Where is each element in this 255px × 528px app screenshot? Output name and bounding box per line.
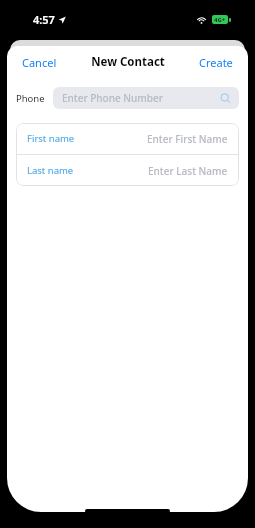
staticText: 4:57	[33, 12, 55, 27]
staticText: Enter Last Name	[148, 164, 228, 178]
staticText: Enter First Name	[147, 132, 228, 146]
button[interactable]: Create	[191, 50, 248, 75]
button[interactable]: Enter Phone Number	[53, 87, 239, 109]
staticText: Last name	[27, 164, 74, 177]
staticText: First name	[27, 132, 75, 145]
staticText: Create	[199, 55, 233, 70]
staticText: Phone	[16, 92, 45, 105]
staticText: Cancel	[22, 55, 57, 70]
staticText: Enter Phone Number	[62, 91, 163, 105]
button[interactable]: Last name	[16, 155, 239, 186]
staticText: 4G+	[214, 16, 226, 24]
button[interactable]: Search	[219, 92, 232, 105]
button[interactable]: First name	[16, 123, 239, 154]
staticText: New Contact	[91, 54, 165, 70]
button[interactable]: Cancel	[7, 50, 65, 75]
